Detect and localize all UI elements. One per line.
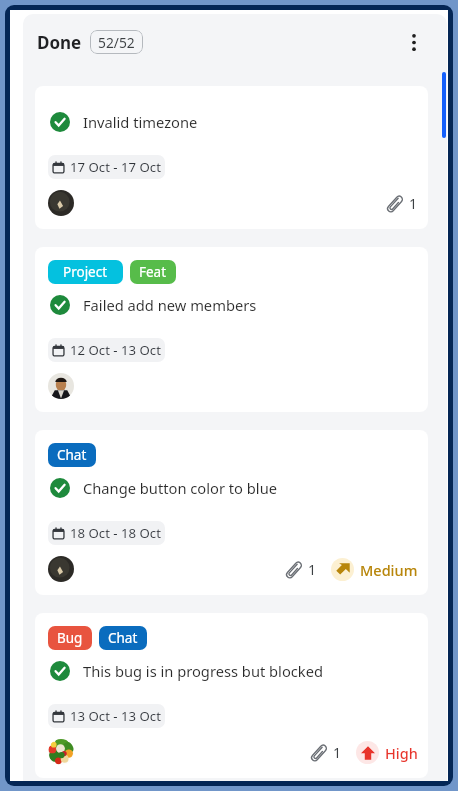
staticText: Project: [63, 263, 108, 281]
staticText: Invalid timezone: [83, 112, 198, 132]
staticText: 12 Oct - 13 Oct: [70, 341, 161, 359]
staticText: 1: [308, 560, 317, 579]
button[interactable]: Project: [48, 260, 123, 284]
button[interactable]: Medium: [331, 558, 418, 581]
staticText: Failed add new members: [83, 295, 257, 315]
staticText: Chat: [57, 446, 87, 464]
staticText: Feat: [139, 263, 167, 281]
button[interactable]: Chat: [99, 626, 147, 650]
staticText: This bug is in progress but blocked: [83, 661, 323, 681]
staticText: 52/52: [98, 33, 135, 52]
button[interactable]: Feat: [130, 260, 176, 284]
staticText: Bug: [57, 629, 83, 647]
staticText: 13 Oct - 13 Oct: [70, 707, 161, 725]
button[interactable]: Chat: [48, 443, 96, 467]
button[interactable]: 18 Oct - 18 Oct: [48, 521, 165, 545]
button[interactable]: Chat: [35, 430, 428, 595]
button[interactable]: 13 Oct - 13 Oct: [48, 704, 165, 728]
staticText: Change button color to blue: [83, 478, 277, 498]
button[interactable]: Project: [35, 247, 428, 412]
staticText: 18 Oct - 18 Oct: [70, 524, 161, 542]
staticText: 1: [409, 194, 418, 213]
button[interactable]: More options: [396, 24, 432, 60]
button[interactable]: 52/52: [90, 30, 143, 54]
button[interactable]: Bug: [35, 613, 428, 778]
staticText: High: [385, 743, 418, 763]
button[interactable]: 12 Oct - 13 Oct: [48, 338, 165, 362]
staticText: 17 Oct - 17 Oct: [70, 158, 161, 176]
staticText: Chat: [108, 629, 138, 647]
button[interactable]: Invalid timezone: [35, 86, 428, 229]
staticText: Medium: [360, 560, 418, 580]
staticText: Done: [37, 31, 82, 54]
button[interactable]: Bug: [48, 626, 92, 650]
staticText: 1: [333, 743, 342, 762]
button[interactable]: 17 Oct - 17 Oct: [48, 155, 165, 179]
button[interactable]: High: [356, 741, 418, 764]
